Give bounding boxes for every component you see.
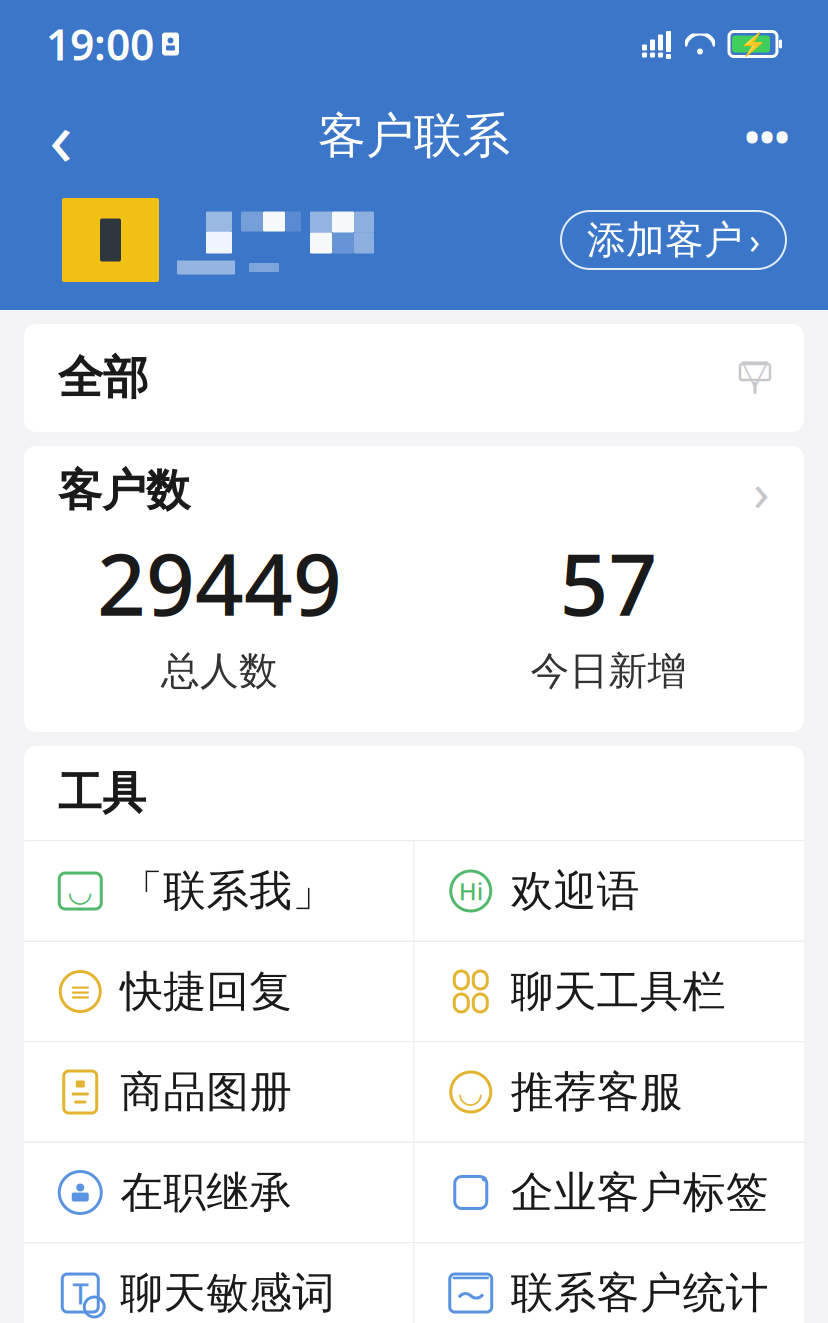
staticText: Hi (459, 875, 483, 907)
staticText: 客户联系 (318, 106, 510, 165)
staticText: ▽ (741, 352, 769, 392)
staticText: 工具 (58, 766, 146, 820)
staticText: 〜 (456, 1279, 485, 1315)
button[interactable]: 企业客户标签 (415, 1143, 804, 1242)
button[interactable]: 商品图册 (24, 1042, 413, 1141)
staticText: T (72, 1273, 88, 1312)
button[interactable]: 〜 (415, 1243, 804, 1323)
staticText: 全部 (58, 350, 148, 406)
staticText: 在职继承 (120, 1166, 292, 1219)
staticText: 「联系我」 (120, 865, 335, 917)
button[interactable]: 全部 (24, 324, 804, 432)
staticText: 商品图册 (120, 1066, 292, 1118)
staticText: 联系客户统计 (511, 1267, 769, 1319)
button[interactable]: 返回 (22, 97, 100, 175)
staticText: 欢迎语 (511, 865, 640, 917)
staticText: 聊天敏感词 (120, 1267, 335, 1319)
button[interactable]: T (24, 1243, 413, 1323)
staticText: ≡ (69, 976, 91, 1007)
button[interactable]: 添加客户 (561, 211, 786, 269)
staticText: ‹ (49, 85, 73, 187)
staticText: 29449 (97, 526, 342, 639)
button[interactable]: 聊天工具栏 (415, 942, 804, 1041)
staticText: 企业客户标签 (511, 1166, 769, 1219)
staticText: ••• (744, 109, 789, 162)
staticText: › (753, 455, 770, 526)
staticText: 今日新增 (530, 647, 686, 695)
button[interactable]: 在职继承 (24, 1143, 413, 1242)
button[interactable]: ◡ (415, 1042, 804, 1141)
staticText: ⚡ (739, 31, 767, 57)
button[interactable]: 更多 (728, 97, 806, 175)
staticText: 总人数 (161, 647, 278, 695)
button[interactable]: ≡ (24, 942, 413, 1041)
staticText: 客户数 (58, 464, 190, 518)
button[interactable]: ◡ (24, 841, 413, 940)
button[interactable]: Hi (415, 841, 804, 940)
staticText: 推荐客服 (511, 1066, 683, 1118)
staticText: ◡ (458, 1075, 484, 1109)
staticText: ◡ (67, 874, 93, 908)
staticText: 19:00 (46, 16, 154, 72)
staticText: 添加客户 (587, 216, 743, 264)
button[interactable]: 客户数 (24, 446, 804, 732)
staticText: 聊天工具栏 (511, 965, 726, 1018)
staticText: › (749, 216, 760, 264)
staticText: 57 (559, 526, 657, 639)
staticText: 快捷回复 (120, 965, 292, 1018)
